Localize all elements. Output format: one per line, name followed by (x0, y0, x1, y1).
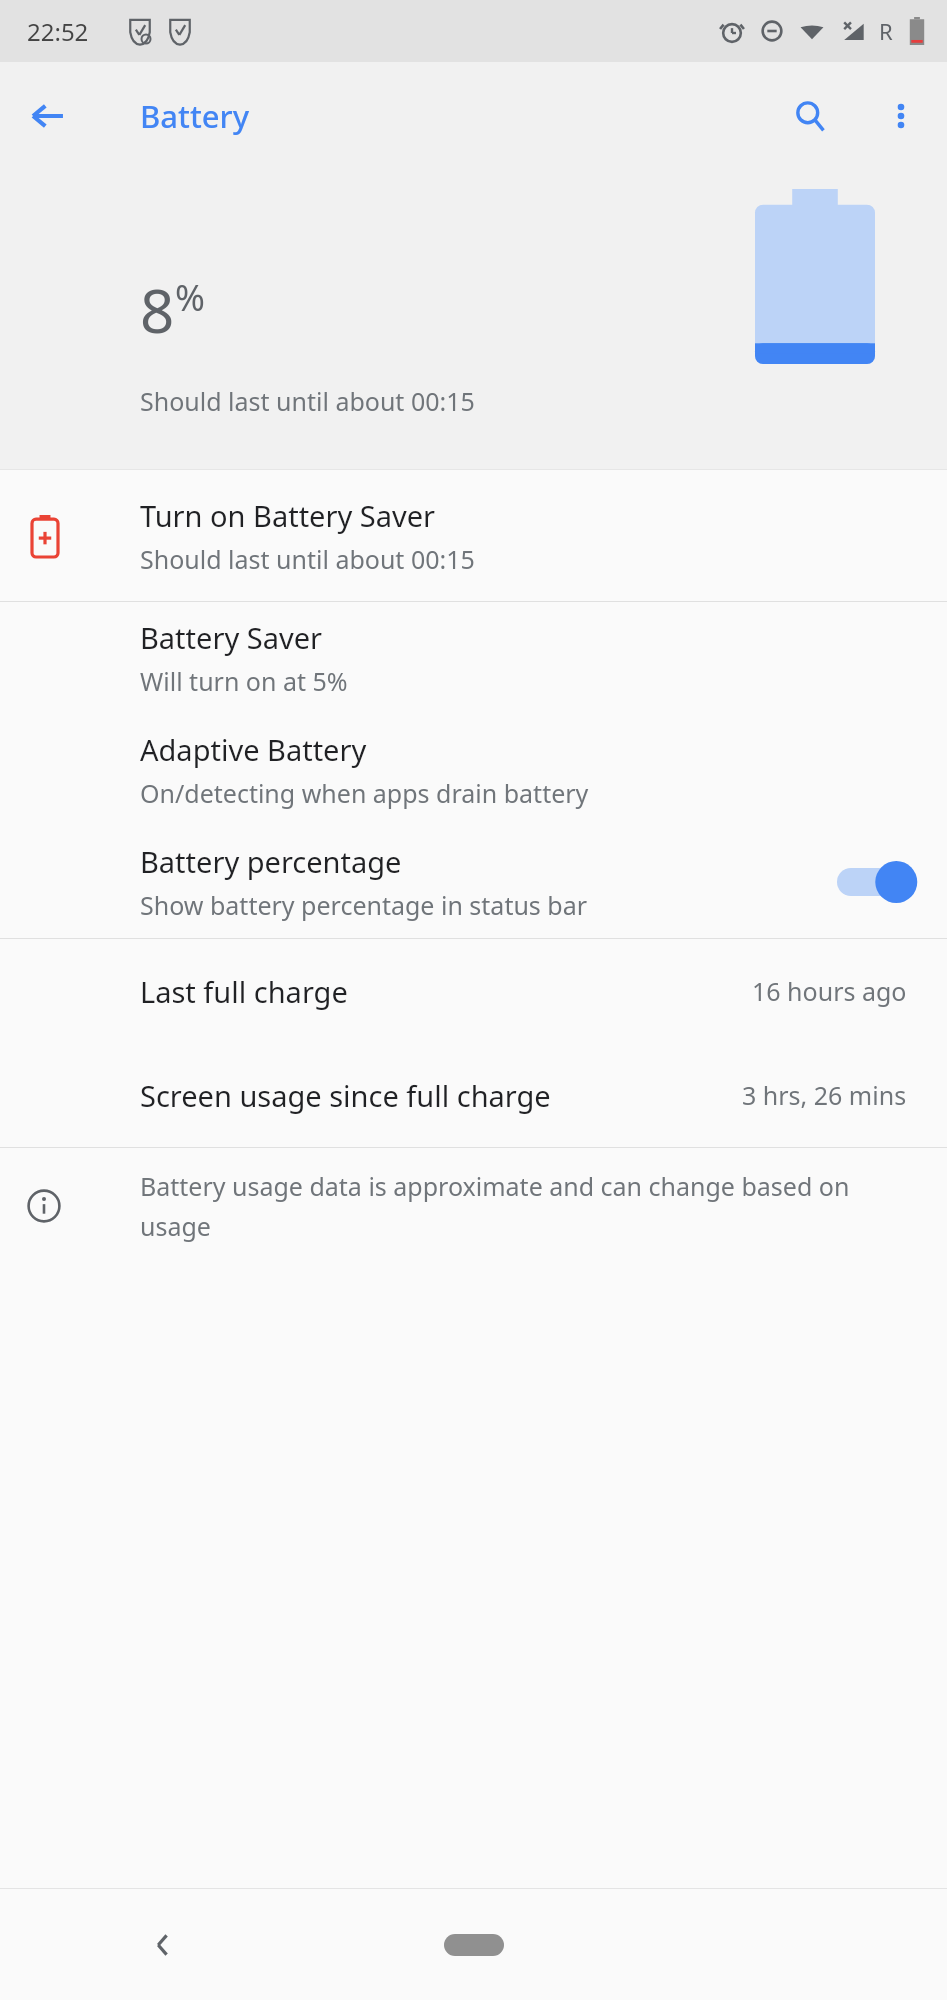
staticText: Battery usage data is approximate and ca… (140, 1169, 850, 1203)
staticText: 22:52 (27, 15, 89, 48)
staticText: Should last until about 00:15 (140, 542, 475, 576)
button[interactable]: Back (16, 84, 80, 148)
staticText: Battery percentage (140, 842, 402, 881)
staticText: usage (140, 1209, 211, 1243)
button[interactable]: Screen usage since full charge (0, 1043, 947, 1147)
button[interactable]: More options (869, 84, 933, 148)
staticText: Screen usage since full charge (140, 1076, 551, 1115)
staticText: 16 hours ago (752, 974, 907, 1008)
staticText: On/detecting when apps drain battery (140, 776, 589, 810)
staticText: Show battery percentage in status bar (140, 888, 588, 922)
button[interactable]: Turn on Battery Saver (0, 470, 947, 601)
staticText: 8 (140, 269, 175, 351)
button[interactable]: Home (414, 1915, 534, 1975)
button[interactable]: Search (778, 84, 842, 148)
staticText: Will turn on at 5% (140, 664, 348, 698)
staticText: Battery (140, 95, 250, 137)
button[interactable]: Adaptive Battery (0, 714, 947, 826)
button[interactable]: Battery Saver (0, 602, 947, 714)
staticText: R (879, 16, 893, 46)
staticText: Last full charge (140, 972, 348, 1011)
staticText: % (175, 273, 205, 322)
button[interactable]: Back (125, 1907, 201, 1983)
staticText: Should last until about 00:15 (140, 384, 475, 418)
staticText: Adaptive Battery (140, 730, 367, 769)
staticText: Turn on Battery Saver (140, 496, 436, 535)
button[interactable]: Battery percentage (0, 826, 947, 938)
button[interactable]: Last full charge (0, 939, 947, 1043)
staticText: Battery Saver (140, 618, 322, 657)
staticText: 3 hrs, 26 mins (742, 1078, 907, 1112)
